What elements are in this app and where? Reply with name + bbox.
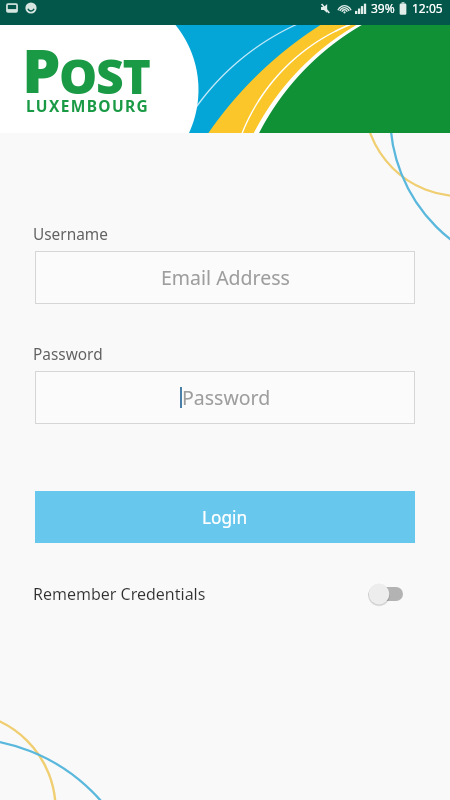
staticText: Username xyxy=(33,224,108,245)
staticText: 39% xyxy=(371,0,395,16)
button[interactable]: Email Address xyxy=(35,251,415,304)
staticText: P xyxy=(22,28,59,111)
staticText: Remember Credentials xyxy=(33,583,206,605)
staticText: Email Address xyxy=(161,264,290,291)
staticText: Login xyxy=(202,506,248,529)
staticText: LUXEMBOURG xyxy=(26,95,150,116)
button[interactable]: Login xyxy=(35,491,415,543)
button[interactable]: Remember Credentials toggle xyxy=(361,581,403,607)
staticText: 12:05 xyxy=(412,0,443,16)
staticText: Password xyxy=(33,344,103,365)
staticText: OST xyxy=(59,43,150,108)
button[interactable]: Password xyxy=(35,371,415,424)
staticText: Password xyxy=(182,384,271,411)
